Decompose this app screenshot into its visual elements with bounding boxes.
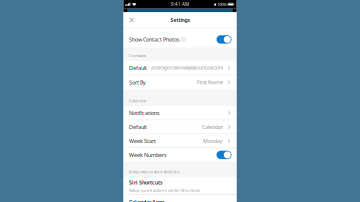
staticText: Default xyxy=(129,64,147,71)
staticText: Siri Shortcuts xyxy=(129,179,163,186)
staticText: Contacts xyxy=(129,53,146,58)
staticText: Monday xyxy=(203,137,223,145)
staticText: Calendar xyxy=(129,98,147,103)
button[interactable]: Week Numbers xyxy=(123,148,236,162)
staticText: Default xyxy=(129,123,147,131)
button[interactable]: Close xyxy=(126,14,137,26)
staticText: Show Contact Photos xyxy=(129,36,180,43)
staticText: 100% xyxy=(217,1,226,7)
staticText: Sort By xyxy=(129,79,146,86)
staticText: Integrations And Add-Ins xyxy=(129,169,180,174)
staticText: Settings xyxy=(170,17,189,23)
staticText: Notifications xyxy=(129,109,160,117)
button[interactable]: Notifications xyxy=(123,106,236,120)
staticText: Week Numbers xyxy=(129,151,167,159)
staticText: First Name xyxy=(197,79,223,86)
button[interactable]: Default xyxy=(123,61,236,75)
button[interactable]: Sort By xyxy=(123,75,236,89)
button[interactable]: Calendar Apps xyxy=(123,195,236,202)
staticText: 9:41 AM xyxy=(171,1,189,7)
staticText: Calendar xyxy=(202,123,223,131)
staticText: Setup quick actions via Siri Shortcuts xyxy=(129,187,200,193)
button[interactable]: Default xyxy=(123,120,236,134)
button[interactable]: Siri Shortcuts xyxy=(123,177,236,195)
staticText: Week Start xyxy=(129,137,156,145)
staticText: i xyxy=(183,37,184,42)
button[interactable]: Week Start xyxy=(123,134,236,148)
staticText: Calendar Apps xyxy=(129,198,165,202)
staticText: andriigorokhovskyi@outlook.com xyxy=(151,65,223,71)
button[interactable]: Show Contact Photos xyxy=(123,28,236,48)
